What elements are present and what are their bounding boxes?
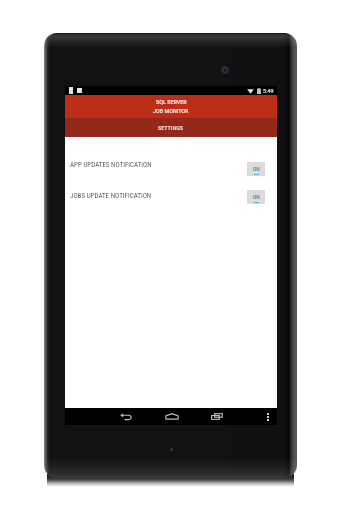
staticText: JOB MONITOR — [153, 107, 189, 114]
button[interactable] — [65, 186, 277, 207]
button[interactable]: More options — [262, 408, 274, 425]
button[interactable]: Recent apps — [204, 408, 230, 425]
staticText: SQL SERVER — [156, 98, 187, 105]
staticText: SETTINGS — [158, 124, 184, 131]
staticText: ON — [253, 194, 260, 201]
button[interactable]: SETTINGS — [65, 118, 277, 137]
staticText: JOBS UPDATE NOTIFICATION — [70, 192, 152, 200]
button[interactable]: ON — [247, 162, 265, 176]
staticText: ON — [253, 166, 260, 173]
button[interactable] — [65, 158, 277, 179]
button[interactable]: ON — [247, 190, 265, 204]
button[interactable]: Back — [113, 408, 139, 425]
staticText: 5:49 — [263, 87, 274, 94]
staticText: APP UPDATES NOTIFICATION — [70, 161, 152, 169]
button[interactable]: Home — [159, 408, 185, 425]
